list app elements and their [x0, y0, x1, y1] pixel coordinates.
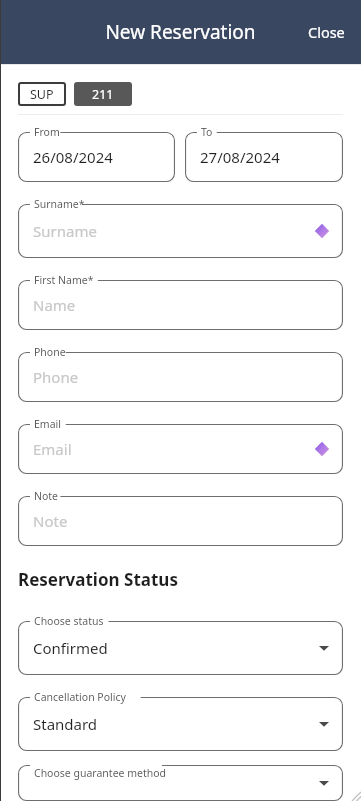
- staticText: Reservation Status: [18, 568, 178, 591]
- staticText: Surname*: [34, 197, 85, 211]
- button[interactable]: Name: [18, 280, 343, 330]
- staticText: Choose status: [34, 614, 104, 628]
- staticText: Email: [34, 417, 61, 431]
- button[interactable]: Email: [18, 424, 343, 474]
- staticText: Surname: [33, 221, 97, 241]
- staticText: Note: [34, 489, 59, 503]
- staticText: First Name*: [34, 273, 94, 287]
- button[interactable]: 26/08/2024: [18, 132, 175, 182]
- button[interactable]: Phone: [18, 352, 343, 402]
- button[interactable]: Confirmed: [18, 621, 343, 675]
- staticText: Phone: [33, 367, 79, 387]
- staticText: From: [34, 125, 60, 139]
- staticText: Email: [33, 439, 72, 459]
- button[interactable]: SUP: [18, 82, 66, 106]
- button[interactable]: Note: [18, 496, 343, 546]
- staticText: Close: [308, 22, 345, 42]
- staticText: Name: [33, 295, 76, 315]
- staticText: Confirmed: [33, 638, 108, 658]
- staticText: To: [201, 125, 213, 139]
- staticText: 211: [92, 86, 114, 103]
- staticText: SUP: [30, 86, 54, 103]
- staticText: Choose guarantee method: [34, 766, 167, 780]
- staticText: 26/08/2024: [33, 147, 113, 167]
- button[interactable]: Surname: [18, 204, 343, 258]
- staticText: Phone: [34, 345, 66, 359]
- button[interactable]: Standard: [18, 697, 343, 751]
- button[interactable]: 27/08/2024: [185, 132, 343, 182]
- button[interactable]: Close: [300, 16, 353, 48]
- staticText: Standard: [33, 714, 98, 734]
- staticText: New Reservation: [105, 19, 256, 45]
- staticText: Note: [33, 511, 68, 531]
- staticText: Cancellation Policy: [34, 690, 126, 704]
- button[interactable]: [18, 765, 343, 801]
- staticText: 27/08/2024: [200, 147, 280, 167]
- button[interactable]: 211: [74, 82, 132, 106]
